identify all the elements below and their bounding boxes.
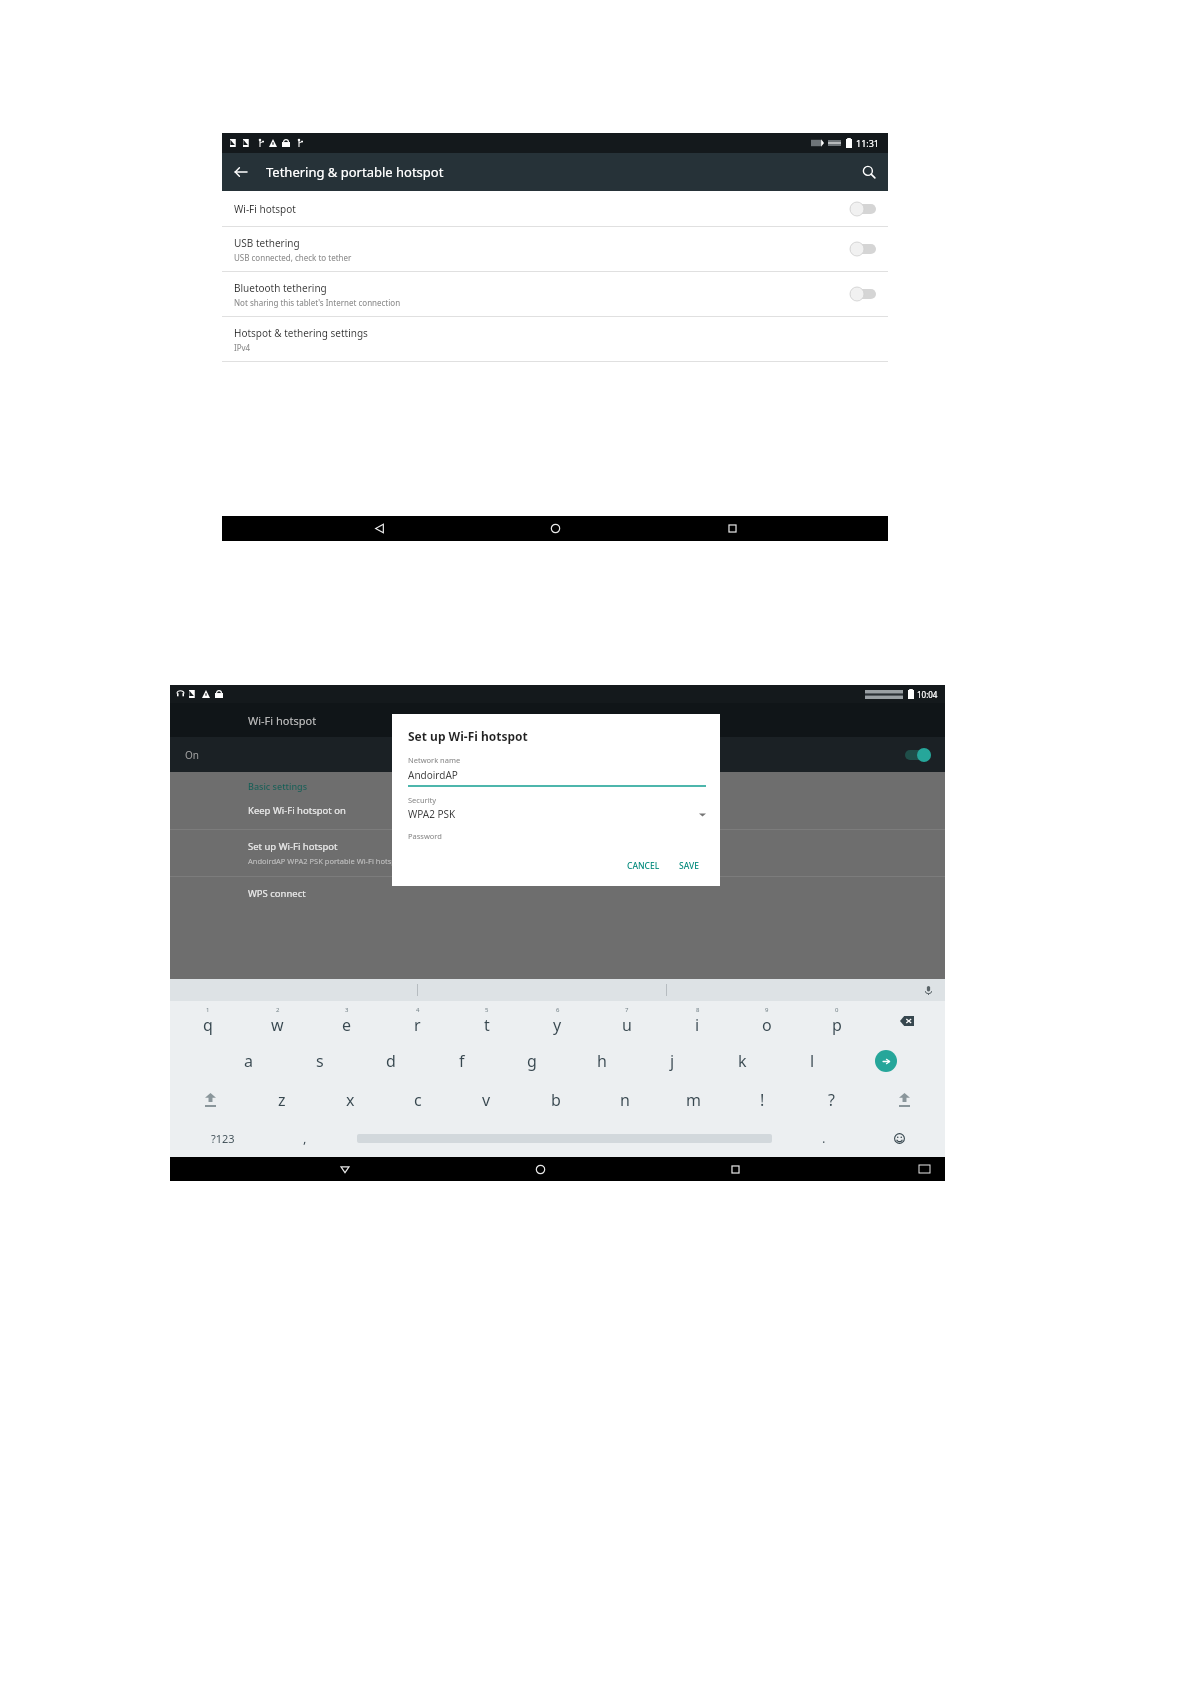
button[interactable]: Enter <box>847 1041 924 1080</box>
button[interactable]: Hotspot & tethering settings <box>222 317 888 361</box>
staticText: 8 <box>696 1006 700 1014</box>
staticText: Password <box>408 831 442 841</box>
button[interactable]: 6 <box>522 1001 592 1041</box>
button[interactable]: Bluetooth tethering <box>222 272 888 316</box>
staticText: 3 <box>345 1006 349 1014</box>
button[interactable]: j <box>637 1041 707 1080</box>
staticText: j <box>670 1050 675 1072</box>
staticText: h <box>597 1050 607 1072</box>
button[interactable]: , <box>271 1119 339 1157</box>
button[interactable]: x <box>316 1080 384 1119</box>
button[interactable]: Recents <box>712 516 752 541</box>
button[interactable]: h <box>567 1041 637 1080</box>
button[interactable]: Home <box>519 1157 561 1181</box>
button[interactable]: Back <box>359 516 399 541</box>
staticText: k <box>738 1050 747 1072</box>
staticText: d <box>386 1050 396 1072</box>
staticText: Hotspot & tethering settings <box>234 326 368 340</box>
button[interactable]: CANCEL <box>620 856 667 876</box>
staticText: AndoirdAP WPA2 PSK portable Wi-Fi hotspo… <box>248 856 404 866</box>
staticText: 5 <box>485 1006 489 1014</box>
button[interactable]: USB tethering <box>222 227 888 271</box>
staticText: USB connected, check to tether <box>234 252 352 263</box>
staticText: t <box>484 1014 490 1036</box>
staticText: 9 <box>765 1006 769 1014</box>
staticText: o <box>762 1014 772 1036</box>
button[interactable]: m <box>659 1080 728 1119</box>
button[interactable]: 0 <box>802 1001 872 1041</box>
button[interactable]: z <box>248 1080 316 1119</box>
button[interactable]: ! <box>728 1080 797 1119</box>
staticText: 4 <box>416 1006 420 1014</box>
button[interactable]: n <box>590 1080 659 1119</box>
button[interactable]: Back <box>222 153 260 191</box>
staticText: c <box>414 1089 422 1111</box>
staticText: 1 <box>206 1006 210 1014</box>
staticText: CANCEL <box>627 860 660 872</box>
button[interactable]: k <box>707 1041 777 1080</box>
button[interactable]: Space <box>339 1119 790 1157</box>
button[interactable]: Toggle <box>850 242 876 256</box>
staticText: p <box>832 1014 842 1036</box>
button[interactable]: Search <box>850 153 888 191</box>
button[interactable]: SAVE <box>672 856 706 876</box>
button[interactable]: Switch keyboard <box>909 1157 939 1181</box>
staticText: z <box>278 1089 286 1111</box>
staticText: w <box>271 1014 284 1036</box>
button[interactable]: s <box>284 1041 355 1080</box>
staticText: ! <box>760 1089 765 1111</box>
button[interactable]: Home <box>535 516 575 541</box>
button[interactable]: ? <box>797 1080 866 1119</box>
button[interactable]: 3 <box>312 1001 382 1041</box>
button[interactable]: Hide keyboard <box>324 1157 366 1181</box>
button[interactable]: 2 <box>242 1001 312 1041</box>
button[interactable]: 5 <box>452 1001 522 1041</box>
button[interactable]: l <box>777 1041 847 1080</box>
button[interactable]: Wi-Fi hotspot toggle <box>905 748 931 762</box>
staticText: Bluetooth tethering <box>234 281 327 295</box>
button[interactable]: 8 <box>662 1001 732 1041</box>
button[interactable]: Emoji <box>858 1119 941 1157</box>
staticText: s <box>316 1050 324 1072</box>
button[interactable]: On <box>170 737 945 772</box>
button[interactable]: ?123 <box>174 1119 271 1157</box>
staticText: x <box>346 1089 355 1111</box>
button[interactable]: 9 <box>732 1001 802 1041</box>
staticText: r <box>414 1014 421 1036</box>
staticText: v <box>482 1089 491 1111</box>
staticText: g <box>527 1050 537 1072</box>
button[interactable]: f <box>426 1041 497 1080</box>
button[interactable]: g <box>497 1041 567 1080</box>
staticText: USB tethering <box>234 236 300 250</box>
staticText: IPv4 <box>234 342 251 353</box>
staticText: i <box>695 1014 700 1036</box>
button[interactable]: v <box>452 1080 521 1119</box>
staticText: Basic settings <box>248 780 308 792</box>
button[interactable]: d <box>355 1041 426 1080</box>
button[interactable]: a <box>213 1041 284 1080</box>
button[interactable]: c <box>384 1080 452 1119</box>
button[interactable]: Shift <box>173 1080 248 1119</box>
button[interactable]: Shift <box>866 1080 942 1119</box>
button[interactable]: Recents <box>714 1157 756 1181</box>
button[interactable]: b <box>521 1080 590 1119</box>
staticText: b <box>551 1089 561 1111</box>
button[interactable]: 7 <box>592 1001 662 1041</box>
button[interactable]: Toggle <box>850 287 876 301</box>
button[interactable]: WPA2 PSK <box>408 807 706 821</box>
staticText: f <box>459 1050 465 1072</box>
button[interactable]: . <box>790 1119 858 1157</box>
button[interactable]: Backspace <box>872 1001 942 1041</box>
staticText: 0 <box>835 1006 839 1014</box>
staticText: Set up Wi-Fi hotspot <box>248 840 338 853</box>
button[interactable]: Wi-Fi hotspot <box>222 191 888 226</box>
staticText: ? <box>828 1089 835 1111</box>
button[interactable]: Toggle <box>850 202 876 216</box>
staticText: , <box>303 1129 307 1147</box>
button[interactable]: 1 <box>173 1001 242 1041</box>
button[interactable]: 4 <box>382 1001 452 1041</box>
staticText: n <box>620 1089 630 1111</box>
staticText: On <box>185 748 199 762</box>
staticText: 7 <box>625 1006 629 1014</box>
button[interactable]: Voice input <box>915 979 941 1001</box>
